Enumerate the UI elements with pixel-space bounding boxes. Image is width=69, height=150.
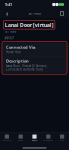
- staticText: Rooms: [18, 139, 23, 141]
- button[interactable]: Automations: [41, 134, 55, 142]
- button[interactable]: Info: [57, 9, 67, 18]
- staticText: Automations: [43, 139, 53, 141]
- staticText: Devices: [31, 139, 37, 141]
- staticText: Dashboard: [2, 139, 11, 141]
- staticText: Connected Via: [6, 44, 35, 50]
- button[interactable]: Connected Via: [3, 42, 66, 56]
- staticText: More: [60, 139, 64, 141]
- staticText: Lanai Door [virtual]: [5, 21, 54, 28]
- staticText: Lanai Door, Virtual [2 Sensors, Connecte…: [6, 64, 47, 71]
- button[interactable]: Dashboard: [0, 134, 14, 142]
- staticText: 9:41: [5, 2, 12, 7]
- staticText: Description: [6, 58, 29, 64]
- staticText: ‹: [6, 9, 8, 18]
- staticText: Set Name: [5, 30, 17, 33]
- button[interactable]: More: [55, 134, 69, 142]
- staticText: ABOUT: [4, 36, 14, 40]
- staticText: SETTINGS: [28, 12, 40, 15]
- button[interactable]: Back: [2, 9, 12, 18]
- staticText: Home Hub: [6, 50, 21, 54]
- button[interactable]: Devices: [28, 134, 41, 142]
- button[interactable]: Rooms: [14, 134, 28, 142]
- button[interactable]: Description: [3, 56, 66, 73]
